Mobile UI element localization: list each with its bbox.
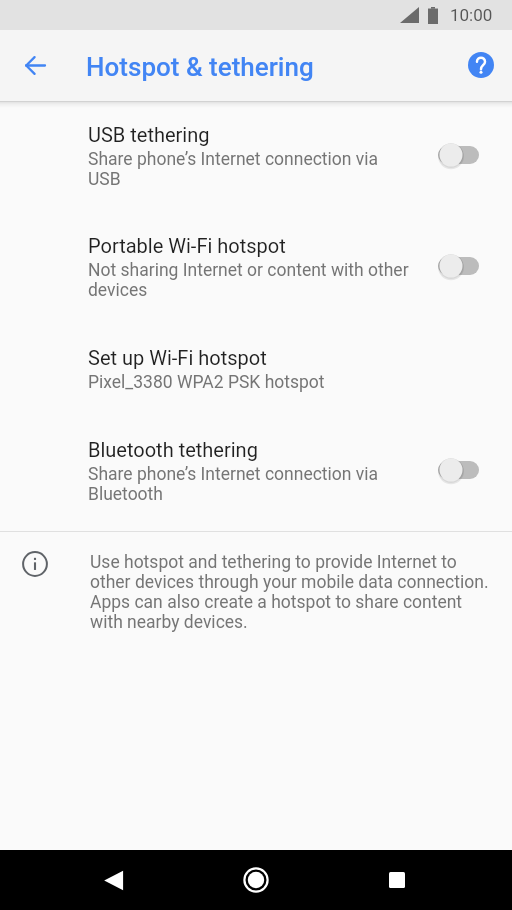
staticText: Portable Wi-Fi hotspot: [88, 234, 286, 257]
staticText: Not sharing Internet or content with oth…: [88, 260, 409, 300]
button[interactable]: Recents: [373, 856, 421, 904]
staticText: Hotspot & tethering: [86, 52, 314, 82]
button[interactable]: Back: [90, 856, 138, 904]
button[interactable]: Help: [462, 46, 500, 84]
button[interactable]: Back: [14, 44, 56, 86]
button[interactable]: Portable Wi-Fi hotspot: [0, 211, 512, 322]
staticText: Use hotspot and tethering to provide Int…: [90, 552, 489, 632]
staticText: USB tethering: [88, 123, 210, 146]
staticText: Set up Wi-Fi hotspot: [88, 346, 267, 369]
staticText: Bluetooth tethering: [88, 438, 258, 461]
staticText: Share phone’s Internet connection via US…: [88, 149, 379, 189]
staticText: Share phone’s Internet connection via Bl…: [88, 464, 379, 504]
button[interactable]: USB tethering: [0, 101, 512, 211]
button[interactable]: Home: [232, 856, 280, 904]
staticText: 10:00: [450, 5, 493, 25]
staticText: Pixel_3380 WPA2 PSK hotspot: [88, 372, 325, 393]
button[interactable]: Set up Wi-Fi hotspot: [0, 322, 512, 415]
button[interactable]: Bluetooth tethering: [0, 415, 512, 526]
